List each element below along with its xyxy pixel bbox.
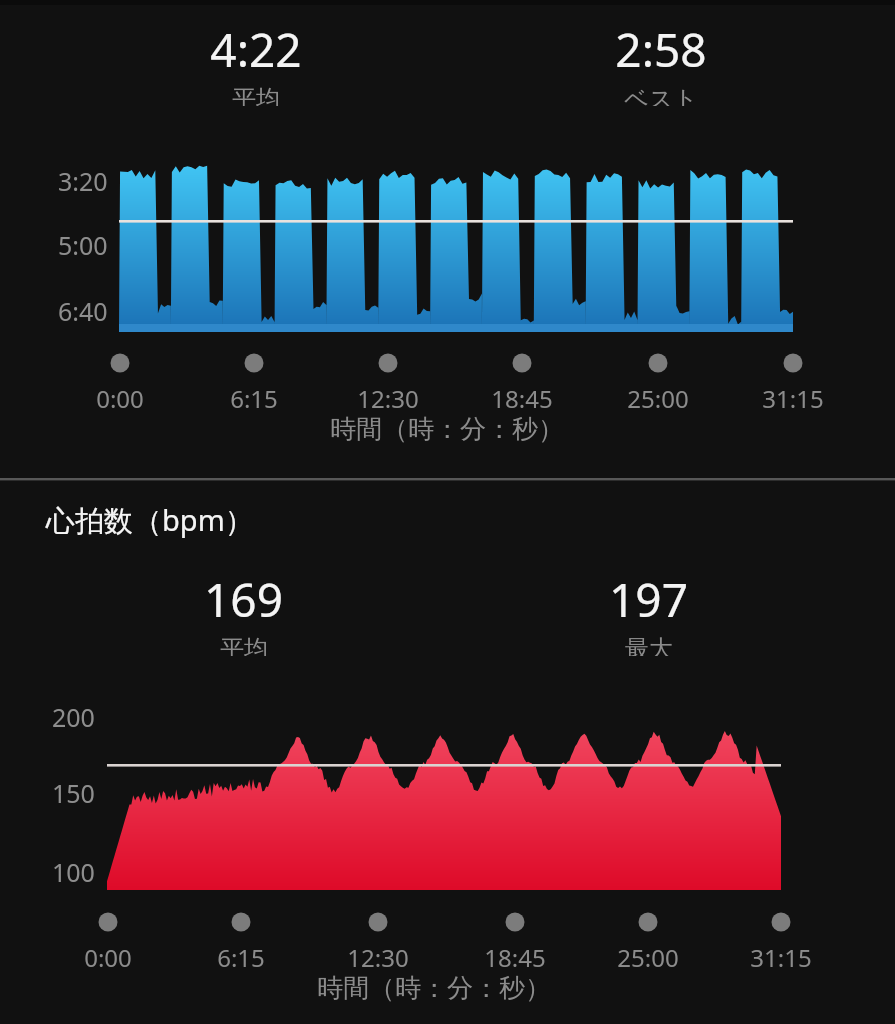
staticText: 5:00 [58,228,108,262]
staticText: 25:00 [617,941,679,974]
staticText: 100 [52,855,95,889]
staticText: 時間（時：分：秒） [317,972,551,1005]
staticText: 31:15 [762,382,824,415]
staticText: 6:15 [217,941,265,974]
staticText: 25:00 [627,382,689,415]
button[interactable]: 169 [133,568,353,656]
staticText: 平均 [232,84,280,106]
staticText: ベスト [624,84,698,106]
staticText: 0:00 [84,941,132,974]
staticText: 心拍数（bpm） [46,500,254,540]
staticText: 150 [52,776,95,810]
staticText: 2:58 [615,18,707,81]
button[interactable]: 4:22 [146,18,366,106]
button[interactable]: 197 [538,568,758,656]
staticText: 最大 [625,634,673,656]
button[interactable]: 心拍数（bpm） [46,500,254,540]
staticText: 200 [52,700,95,734]
staticText: 169 [204,568,283,631]
staticText: 4:22 [210,18,302,81]
staticText: 6:40 [58,294,108,328]
staticText: 18:45 [491,382,553,415]
staticText: 197 [609,568,688,631]
staticText: 平均 [220,634,268,656]
staticText: 12:30 [357,382,419,415]
staticText: 31:15 [750,941,812,974]
staticText: 3:20 [58,164,108,198]
button[interactable]: 2:58 [551,18,771,106]
staticText: 0:00 [96,382,144,415]
staticText: 18:45 [484,941,546,974]
staticText: 時間（時：分：秒） [330,413,564,446]
staticText: 12:30 [347,941,409,974]
staticText: 6:15 [230,382,278,415]
